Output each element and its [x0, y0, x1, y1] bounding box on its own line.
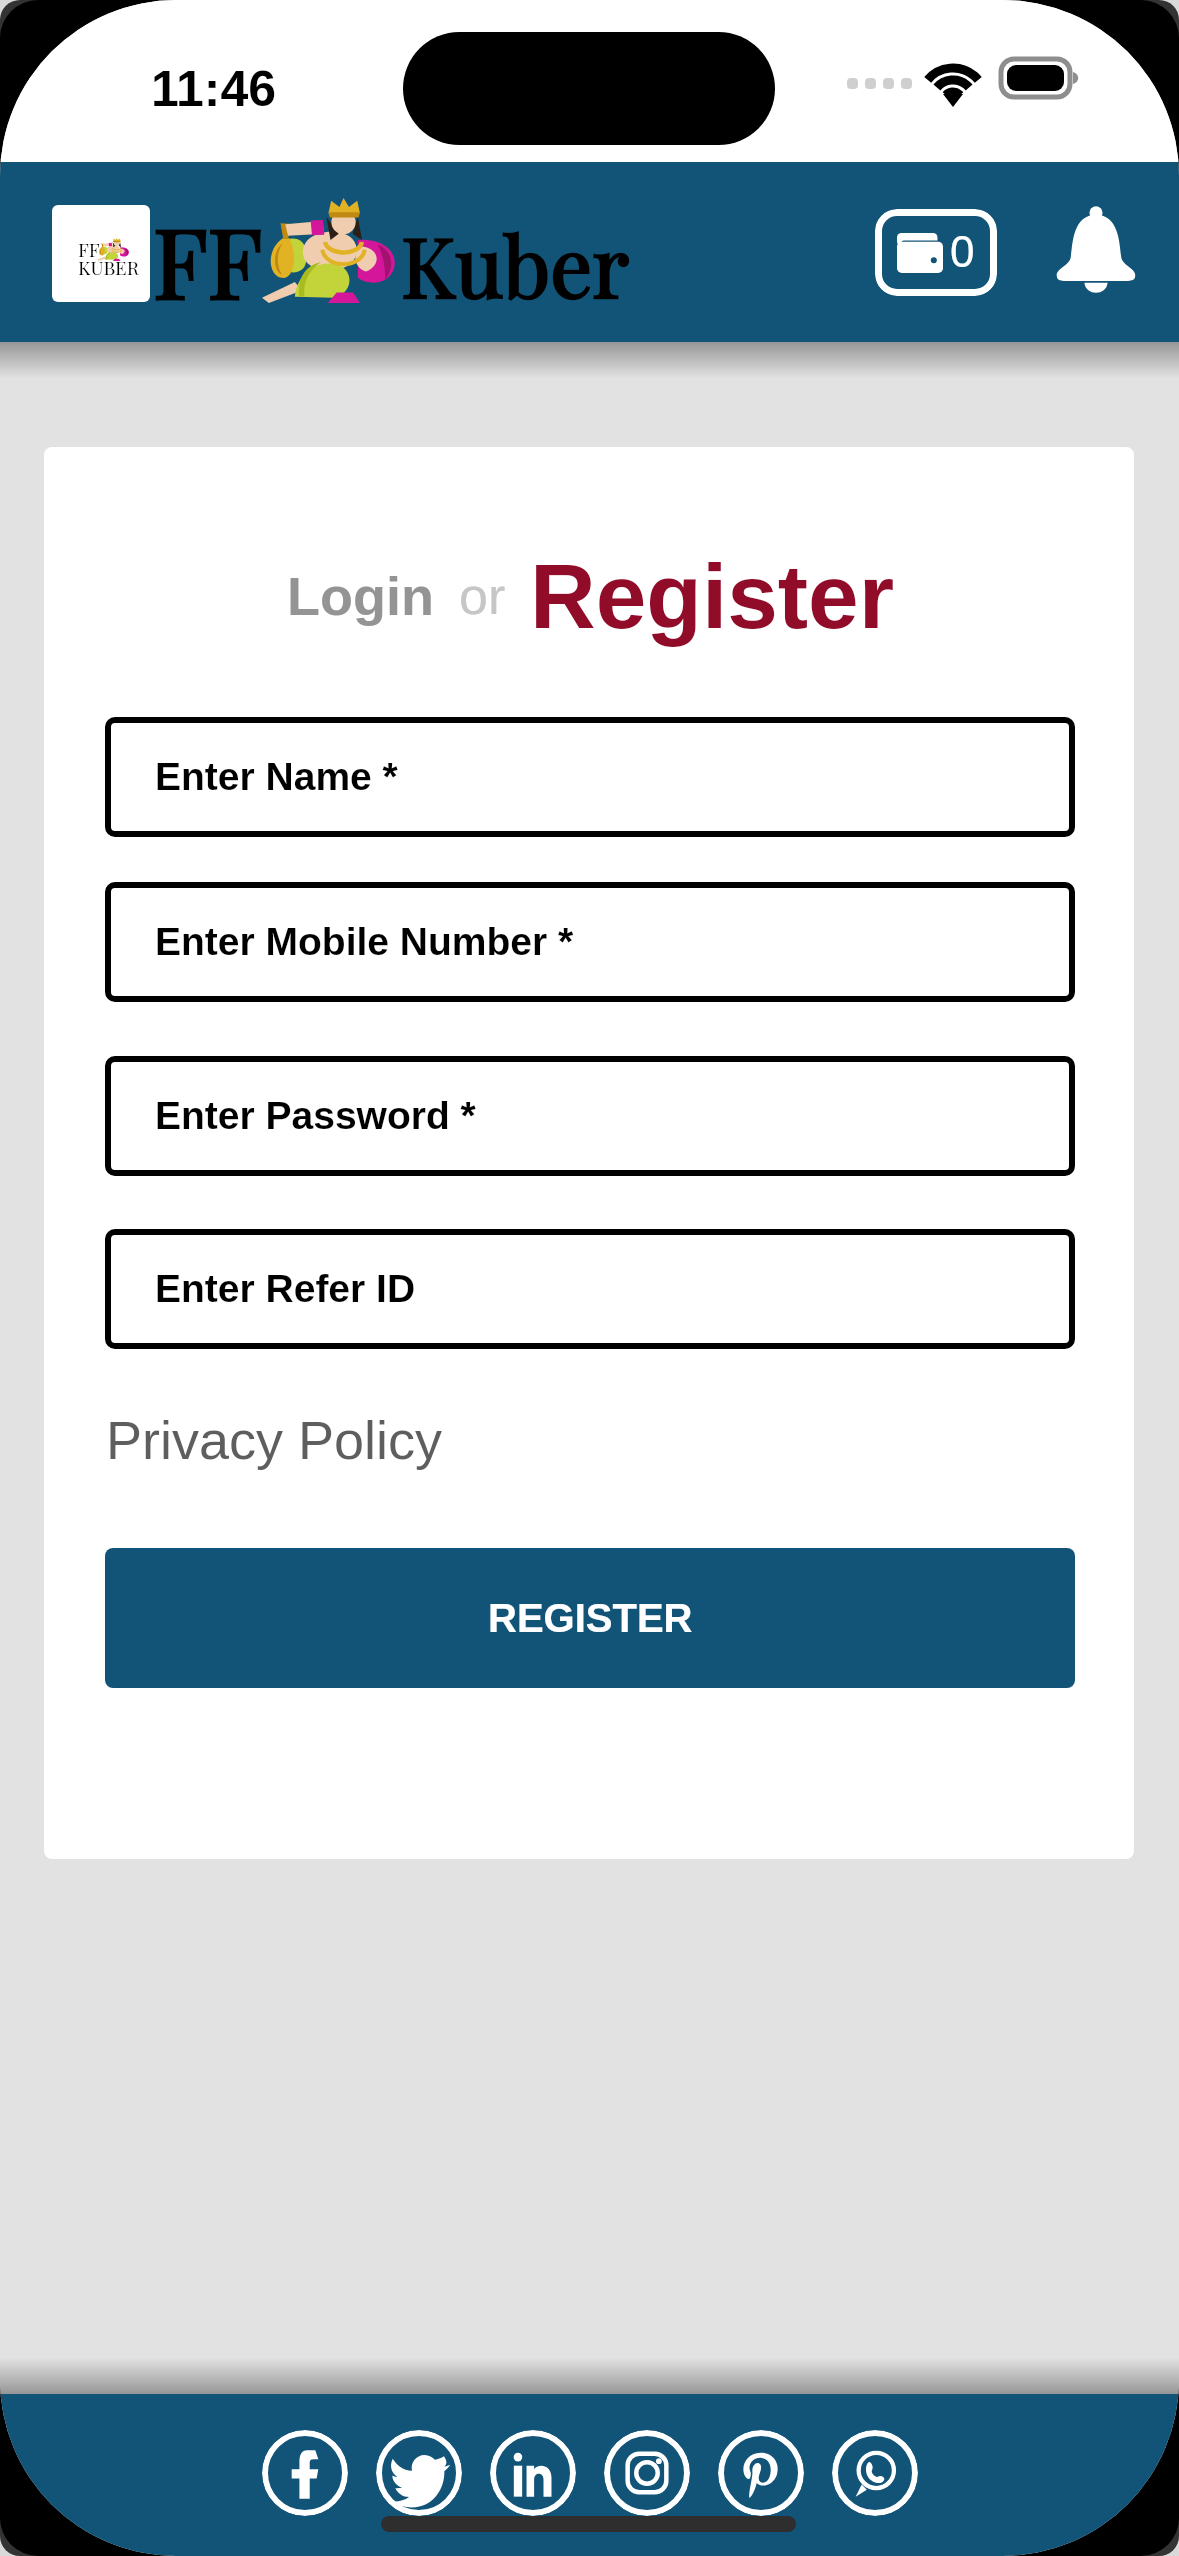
button[interactable]: Enter Mobile Number *: [105, 882, 1075, 1002]
staticText: KUBER: [78, 254, 139, 279]
staticText: Login: [287, 566, 434, 626]
staticText: FF: [153, 195, 263, 323]
button[interactable]: WhatsApp: [832, 2430, 918, 2516]
staticText: Enter Name *: [155, 755, 398, 799]
button[interactable]: Pinterest: [718, 2430, 804, 2516]
staticText: Enter Refer ID: [155, 1267, 416, 1311]
button[interactable]: LinkedIn: [490, 2430, 576, 2516]
staticText: Register: [530, 546, 895, 648]
button[interactable]: Enter Name *: [105, 717, 1075, 837]
button[interactable]: Enter Password *: [105, 1056, 1075, 1176]
button[interactable]: Wallet balance: [875, 209, 997, 296]
staticText: 0: [950, 227, 975, 276]
button[interactable]: Twitter: [376, 2430, 462, 2516]
button[interactable]: Instagram: [604, 2430, 690, 2516]
staticText: 11:46: [151, 61, 277, 117]
staticText: REGISTER: [488, 1596, 693, 1641]
button[interactable]: REGISTER: [105, 1548, 1075, 1688]
button[interactable]: Enter Refer ID: [105, 1229, 1075, 1349]
staticText: Enter Mobile Number *: [155, 920, 574, 964]
staticText: FF: [78, 236, 100, 261]
staticText: Kuber: [401, 208, 630, 319]
button[interactable]: Notifications: [1040, 194, 1151, 308]
button[interactable]: Facebook: [262, 2430, 348, 2516]
staticText: or: [459, 567, 506, 625]
staticText: Enter Password *: [155, 1094, 476, 1138]
button[interactable]: Privacy Policy: [106, 1410, 443, 1470]
